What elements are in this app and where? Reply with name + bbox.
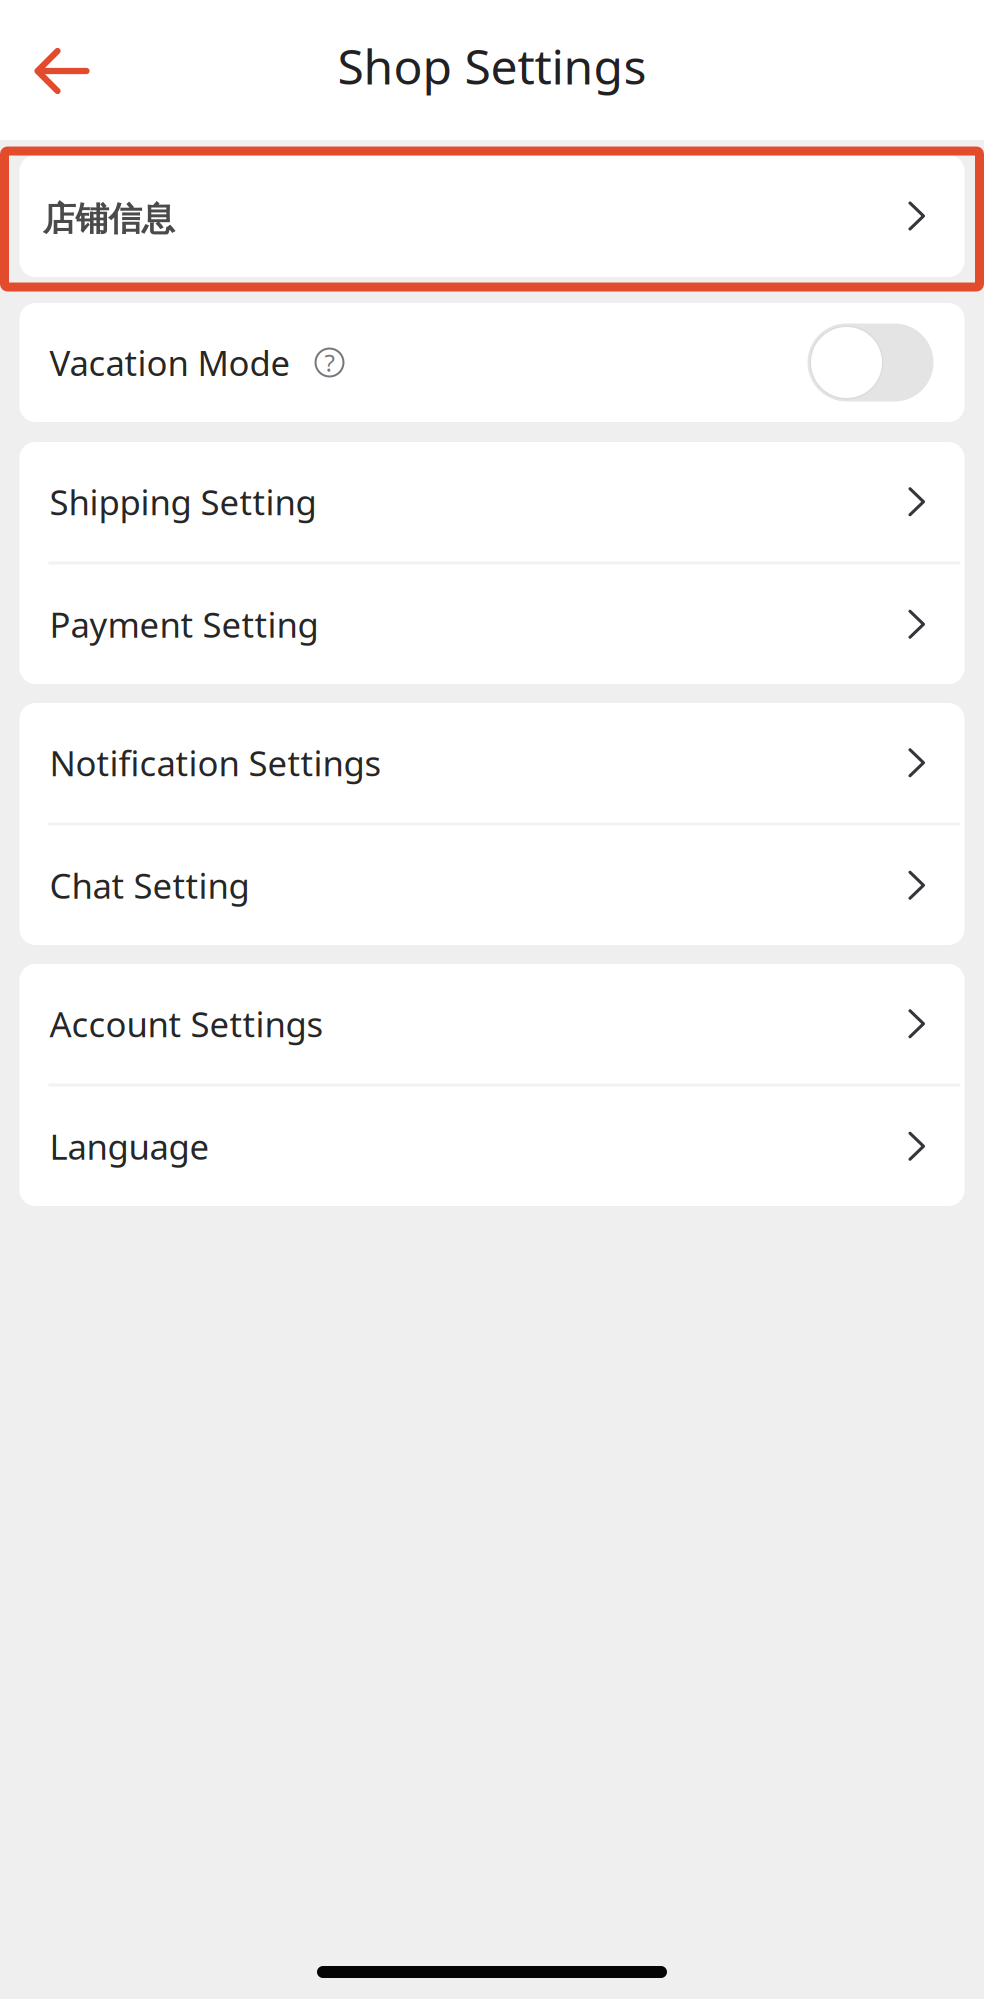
button[interactable]: Back: [0, 0, 107, 140]
staticText: Shop Settings: [337, 34, 646, 98]
button[interactable]: Payment Setting: [19, 564, 964, 684]
staticText: Account Settings: [49, 1001, 323, 1047]
button[interactable]: About vacation mode: [290, 340, 343, 384]
staticText: Payment Setting: [49, 601, 318, 647]
button[interactable]: Vacation Mode: [807, 323, 933, 401]
button[interactable]: Chat Setting: [19, 825, 964, 945]
staticText: 店铺信息: [42, 198, 174, 239]
staticText: Vacation Mode: [49, 339, 290, 385]
staticText: Shipping Setting: [49, 479, 316, 525]
staticText: Language: [49, 1123, 209, 1169]
button[interactable]: 店铺信息: [19, 155, 964, 277]
staticText: Chat Setting: [49, 862, 249, 908]
staticText: Notification Settings: [49, 740, 381, 786]
button[interactable]: Language: [19, 1086, 964, 1206]
staticText: ?: [324, 347, 334, 378]
button[interactable]: Account Settings: [19, 964, 964, 1083]
button[interactable]: Shipping Setting: [19, 442, 964, 561]
button[interactable]: Notification Settings: [19, 703, 964, 822]
